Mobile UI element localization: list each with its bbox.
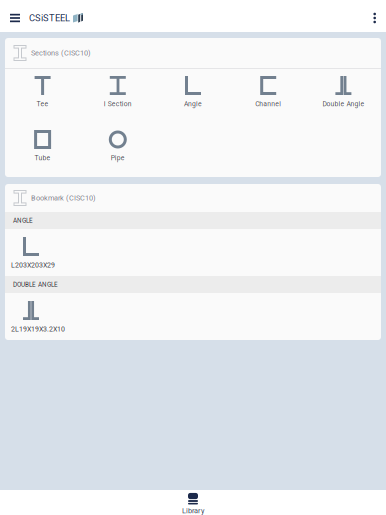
button[interactable]: Library (0, 490, 386, 515)
staticText: 2L19X19X3.2X10 (11, 325, 65, 333)
staticText: I Section (104, 100, 132, 108)
staticText: Library (182, 506, 204, 515)
staticText: Pipe (111, 154, 125, 162)
staticText: Sections (CISC10) (31, 49, 91, 57)
button[interactable]: I Section (80, 69, 155, 123)
staticText: Double Angle (322, 100, 364, 108)
button[interactable]: 2L19X19X3.2X10 (5, 293, 381, 340)
button[interactable]: Double Angle (306, 69, 381, 123)
staticText: Channel (255, 100, 281, 108)
staticText: CSiSTEEL (29, 12, 70, 23)
button[interactable]: Menu (0, 3, 29, 33)
staticText: Angle (184, 100, 202, 108)
button[interactable]: Tee (5, 69, 80, 123)
staticText: Tube (35, 154, 51, 162)
button[interactable]: L203X203X29 (5, 229, 381, 276)
staticText: DOUBLE ANGLE (13, 281, 58, 288)
staticText: Tee (37, 100, 49, 108)
staticText: ANGLE (13, 217, 33, 224)
button[interactable]: More options (364, 3, 386, 33)
staticText: L203X203X29 (11, 261, 55, 269)
button[interactable]: Tube (5, 123, 80, 177)
button[interactable]: Pipe (80, 123, 155, 177)
staticText: Bookmark (CISC10) (31, 194, 96, 202)
button[interactable]: Angle (155, 69, 231, 123)
button[interactable]: Channel (231, 69, 306, 123)
